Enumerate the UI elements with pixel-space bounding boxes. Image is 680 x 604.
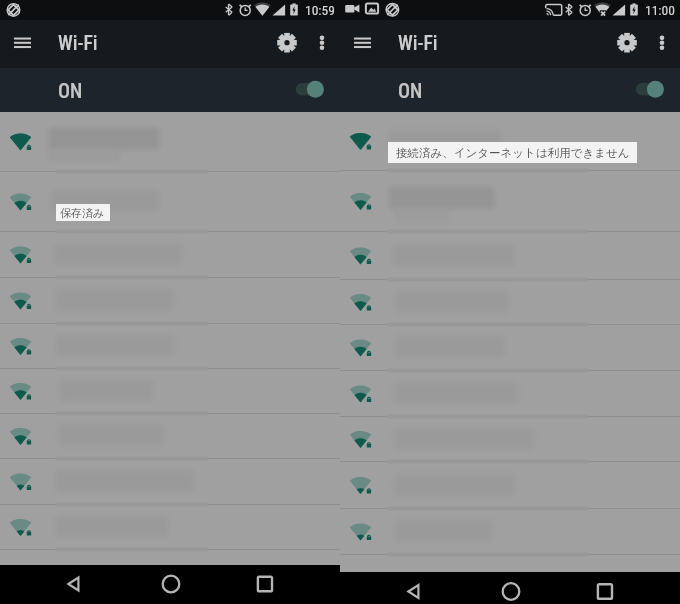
staticText: ON [398, 79, 423, 102]
staticText: 10:59 [305, 2, 335, 18]
staticText: 11:00 [645, 2, 675, 18]
staticText: Wi-Fi [58, 32, 98, 55]
staticText: 保存済み [60, 206, 105, 220]
staticText: 接続済み、インターネットは利用できません [396, 146, 630, 160]
staticText: ON [58, 79, 83, 102]
staticText: Wi-Fi [398, 32, 438, 55]
